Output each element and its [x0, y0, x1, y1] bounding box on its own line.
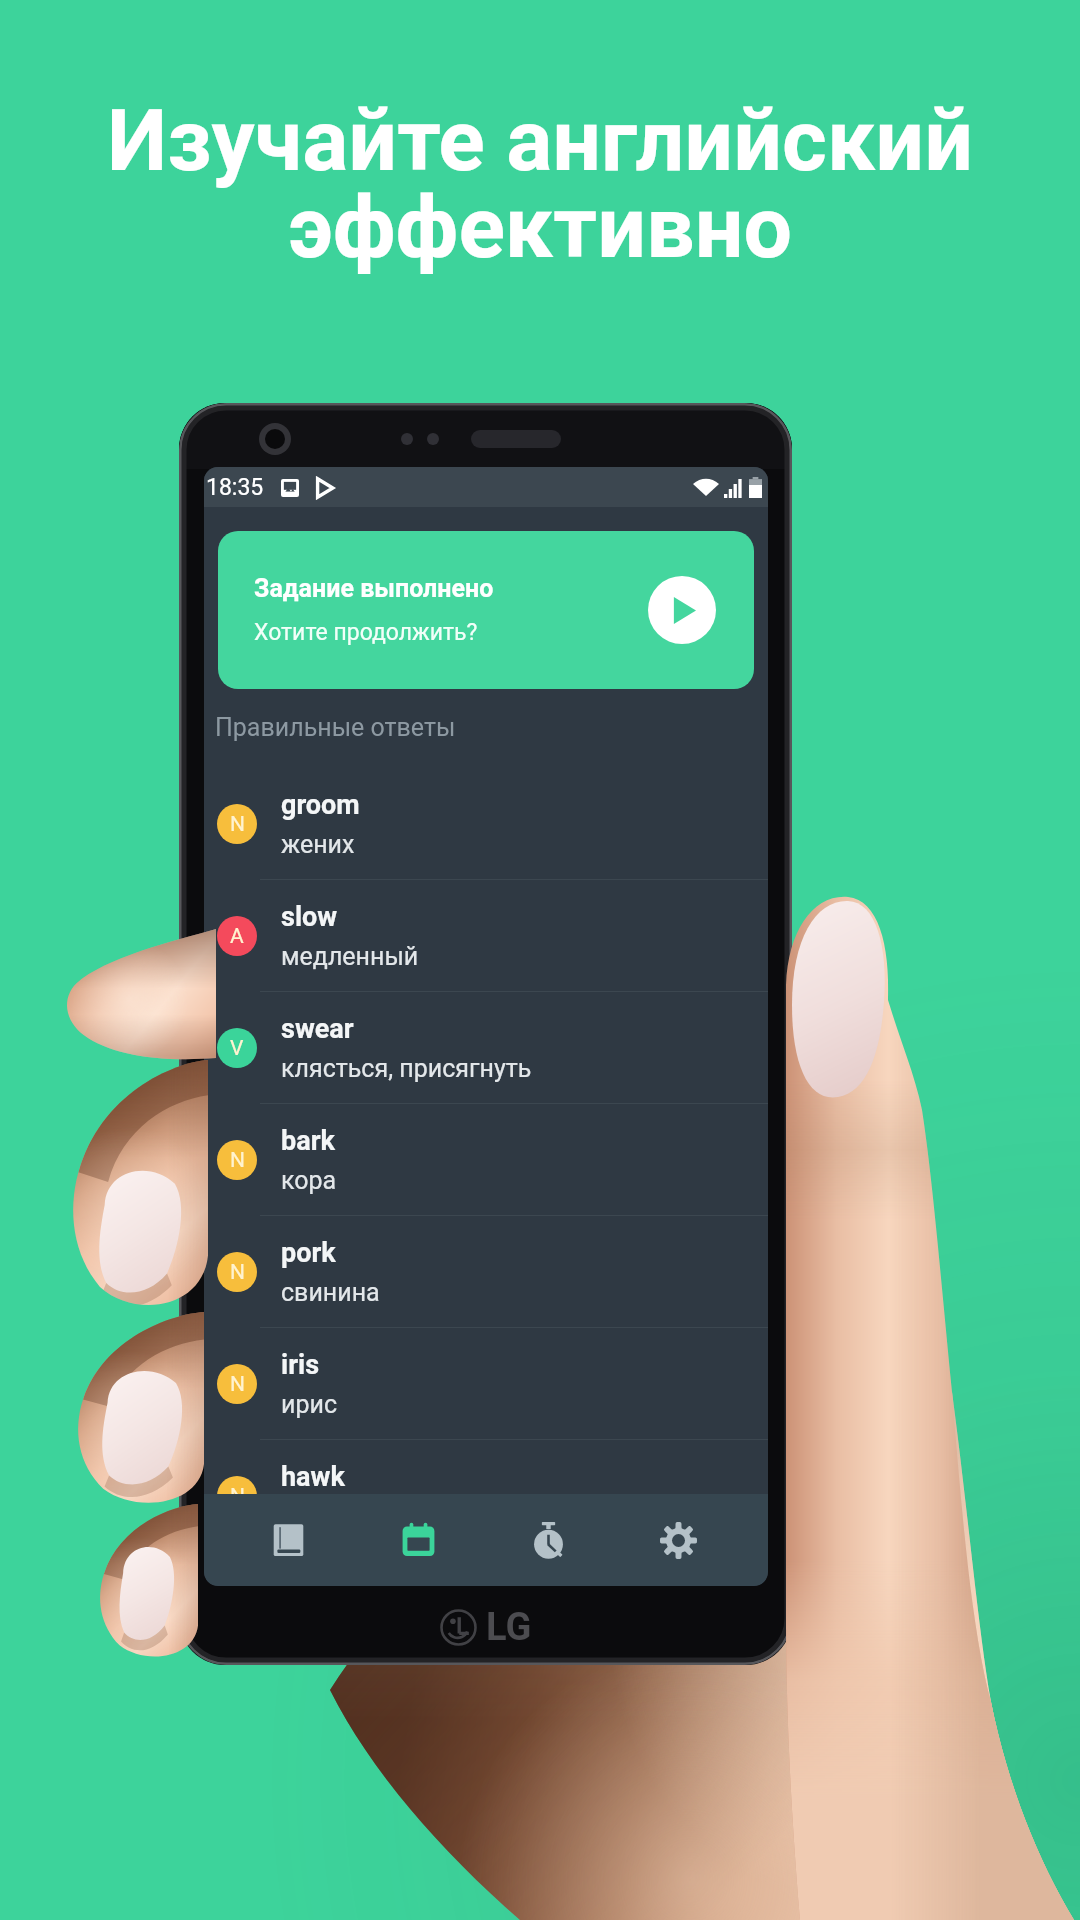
- staticText: hawk: [281, 1461, 345, 1493]
- button[interactable]: N: [204, 1328, 768, 1440]
- staticText: клясться, присягнуть: [281, 1054, 532, 1083]
- button[interactable]: N: [204, 1440, 768, 1552]
- button[interactable]: V: [204, 992, 768, 1104]
- staticText: N: [230, 1148, 245, 1173]
- button[interactable]: A: [204, 880, 768, 992]
- staticText: V: [230, 1036, 244, 1061]
- staticText: N: [230, 1372, 245, 1397]
- staticText: LG: [486, 1605, 532, 1650]
- button[interactable]: Задание выполнено: [218, 531, 754, 689]
- button[interactable]: Настройки: [632, 1494, 724, 1586]
- button[interactable]: N: [204, 768, 768, 880]
- button[interactable]: N: [204, 1104, 768, 1216]
- staticText: Правильные ответы: [215, 713, 456, 742]
- staticText: медленный: [281, 942, 419, 971]
- staticText: Задание выполнено: [254, 574, 494, 603]
- button[interactable]: Словарь: [242, 1494, 334, 1586]
- staticText: swear: [281, 1013, 354, 1045]
- staticText: N: [230, 1260, 245, 1285]
- staticText: жених: [281, 830, 355, 859]
- staticText: кора: [281, 1166, 337, 1195]
- staticText: ястреб: [281, 1502, 361, 1531]
- staticText: 18:35: [206, 474, 264, 501]
- button[interactable]: Таймер: [502, 1494, 594, 1586]
- staticText: Хотите продолжить?: [254, 619, 478, 646]
- staticText: N: [230, 812, 245, 837]
- button[interactable]: Продолжить: [648, 576, 716, 644]
- staticText: свинина: [281, 1278, 380, 1307]
- staticText: N: [230, 1484, 245, 1509]
- staticText: A: [230, 924, 244, 949]
- staticText: groom: [281, 789, 360, 821]
- staticText: slow: [281, 901, 338, 933]
- staticText: Изучайте английский: [0, 90, 1080, 191]
- staticText: bark: [281, 1125, 335, 1157]
- staticText: ирис: [281, 1390, 337, 1419]
- button[interactable]: N: [204, 1216, 768, 1328]
- staticText: эффективно: [0, 177, 1080, 278]
- button[interactable]: Календарь: [372, 1494, 464, 1586]
- staticText: iris: [281, 1349, 320, 1381]
- staticText: pork: [281, 1237, 336, 1269]
